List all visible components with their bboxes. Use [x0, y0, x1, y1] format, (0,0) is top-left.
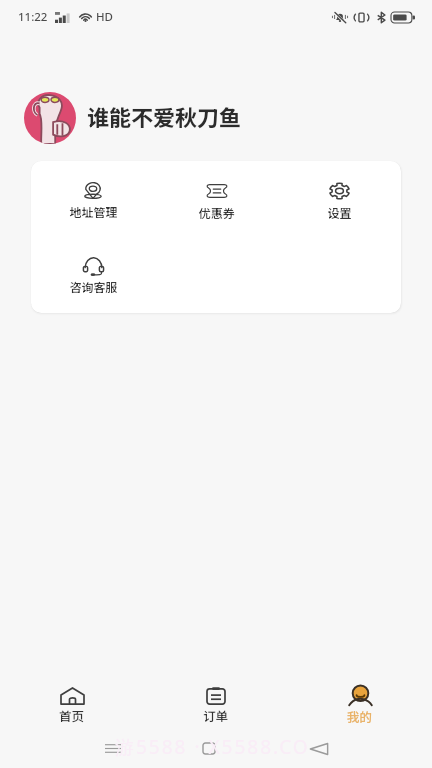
staticText: 首页: [59, 706, 85, 724]
staticText: 游5588 · X5588.CO: [115, 734, 310, 760]
staticText: HD: [96, 9, 114, 25]
staticText: 订单: [203, 706, 229, 724]
button[interactable]: 设置: [278, 161, 401, 221]
staticText: 设置: [327, 204, 352, 221]
button[interactable]: 地址管理: [31, 161, 155, 220]
button[interactable]: 咨询客服: [31, 236, 155, 295]
staticText: 我的: [347, 707, 373, 725]
staticText: 11:22: [18, 9, 48, 25]
button[interactable]: Profile avatar: [24, 92, 76, 144]
staticText: 咨询客服: [69, 278, 118, 295]
staticText: 优惠券: [198, 204, 235, 221]
other: Home: [203, 743, 215, 754]
staticText: 谁能不爱秋刀鱼: [87, 100, 242, 132]
other: Back: [310, 743, 328, 755]
button[interactable]: 我的: [288, 674, 432, 725]
button[interactable]: 优惠券: [155, 161, 278, 221]
staticText: 地址管理: [69, 203, 118, 220]
other: Recent apps: [105, 744, 121, 753]
button[interactable]: 首页: [0, 674, 144, 724]
button[interactable]: 订单: [144, 674, 288, 724]
